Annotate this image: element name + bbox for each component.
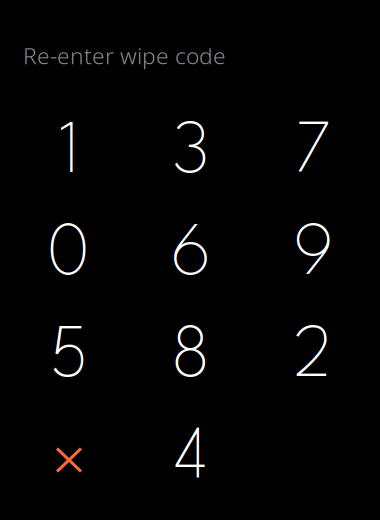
staticText: 6 [171,222,211,290]
staticText: 7 [294,120,331,188]
staticText: 9 [293,222,333,290]
button[interactable]: 9 [252,205,374,307]
button[interactable]: 4 [130,409,252,511]
staticText: 8 [171,324,211,392]
button[interactable]: 5 [8,307,130,409]
staticText: 1 [58,120,79,188]
staticText: Re-enter wipe code [23,40,226,71]
staticText: 0 [47,222,90,290]
staticText: 5 [49,324,88,392]
button[interactable]: 8 [130,307,252,409]
staticText: 4 [173,426,208,494]
button[interactable]: 3 [130,103,252,205]
button[interactable]: 1 [8,103,130,205]
staticText: 3 [172,120,209,188]
button[interactable]: 0 [8,205,130,307]
button[interactable]: 2 [252,307,374,409]
button[interactable]: 7 [252,103,374,205]
staticText: 2 [293,324,332,392]
button[interactable]: Cancel [8,409,130,511]
button[interactable]: 6 [130,205,252,307]
